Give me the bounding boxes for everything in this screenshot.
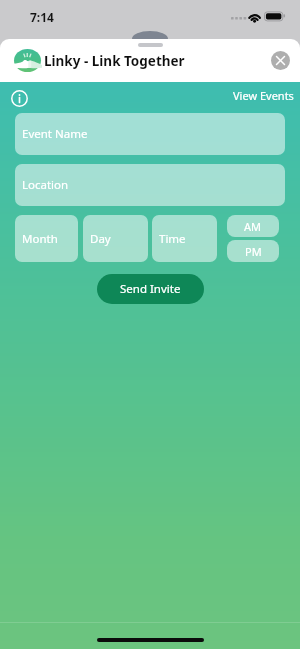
staticText: PM bbox=[245, 244, 262, 259]
staticText: Send Invite bbox=[120, 281, 181, 297]
staticText: Day bbox=[90, 231, 111, 247]
button[interactable]: Time bbox=[152, 215, 217, 262]
button[interactable]: Send Invite bbox=[97, 274, 204, 304]
staticText: 7:14 bbox=[30, 9, 54, 25]
button[interactable]: Information bbox=[7, 86, 31, 110]
button[interactable]: AM bbox=[227, 215, 279, 237]
staticText: Time bbox=[159, 231, 186, 247]
button[interactable]: PM bbox=[227, 240, 279, 262]
button[interactable]: Close bbox=[271, 51, 290, 70]
staticText: Month bbox=[22, 231, 58, 247]
button[interactable]: Location bbox=[15, 164, 285, 206]
button[interactable]: Event Name bbox=[15, 113, 285, 155]
button[interactable]: View Events bbox=[233, 88, 294, 103]
staticText: View Events bbox=[233, 88, 294, 103]
button[interactable]: Day bbox=[83, 215, 148, 262]
staticText: Event Name bbox=[22, 126, 88, 142]
staticText: AM bbox=[244, 219, 262, 234]
staticText: Linky - Link Together bbox=[44, 52, 185, 70]
staticText: Location bbox=[22, 177, 69, 193]
button[interactable]: Month bbox=[15, 215, 78, 262]
